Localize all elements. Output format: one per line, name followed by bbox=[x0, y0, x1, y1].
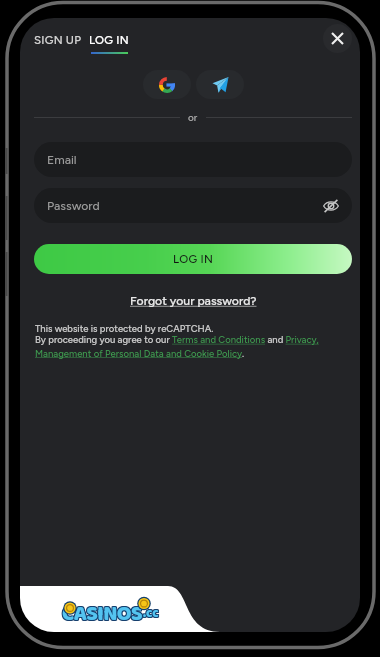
staticText: CASINOS bbox=[61, 596, 141, 620]
staticText: .cc bbox=[144, 604, 160, 625]
staticText: This website is protected by reCAPTCHA. bbox=[35, 323, 214, 334]
staticText: CASINOS bbox=[61, 597, 141, 621]
button[interactable]: Show password bbox=[323, 198, 339, 214]
staticText: CASINOS bbox=[61, 598, 141, 622]
staticText: .cc bbox=[143, 602, 159, 623]
staticText: Email bbox=[47, 152, 77, 167]
button[interactable]: Email bbox=[34, 142, 352, 177]
staticText: CASINOS bbox=[62, 596, 142, 620]
staticText: .cc bbox=[144, 603, 160, 624]
staticText: .cc bbox=[143, 603, 159, 624]
button[interactable]: Password bbox=[34, 188, 352, 223]
staticText: .cc bbox=[143, 604, 159, 625]
staticText: Password bbox=[47, 198, 100, 213]
button[interactable]: Sign in with Google bbox=[143, 70, 191, 99]
staticText: LOG IN bbox=[173, 252, 214, 266]
staticText: By proceeding you agree to our Terms and… bbox=[35, 334, 332, 359]
staticText: SIGN UP bbox=[34, 33, 82, 47]
button[interactable]: Sign in with Telegram bbox=[196, 70, 244, 99]
staticText: .cc bbox=[142, 604, 158, 625]
staticText: LOG IN bbox=[89, 33, 129, 47]
staticText: CASINOS bbox=[63, 596, 143, 620]
staticText: or bbox=[188, 111, 198, 123]
button[interactable]: LOG IN bbox=[87, 30, 131, 57]
button[interactable]: Forgot your password? bbox=[127, 290, 260, 311]
staticText: .cc bbox=[142, 602, 158, 623]
button[interactable]: Close bbox=[323, 24, 352, 53]
staticText: .cc bbox=[142, 603, 158, 624]
staticText: CASINOS bbox=[63, 598, 143, 622]
button[interactable]: LOG IN bbox=[34, 244, 352, 274]
staticText: Forgot your password? bbox=[130, 293, 257, 308]
staticText: .cc bbox=[144, 602, 160, 623]
button[interactable]: SIGN UP bbox=[32, 30, 84, 50]
staticText: CASINOS bbox=[62, 598, 142, 622]
staticText: CASINOS bbox=[62, 597, 142, 621]
staticText: CASINOS bbox=[63, 597, 143, 621]
